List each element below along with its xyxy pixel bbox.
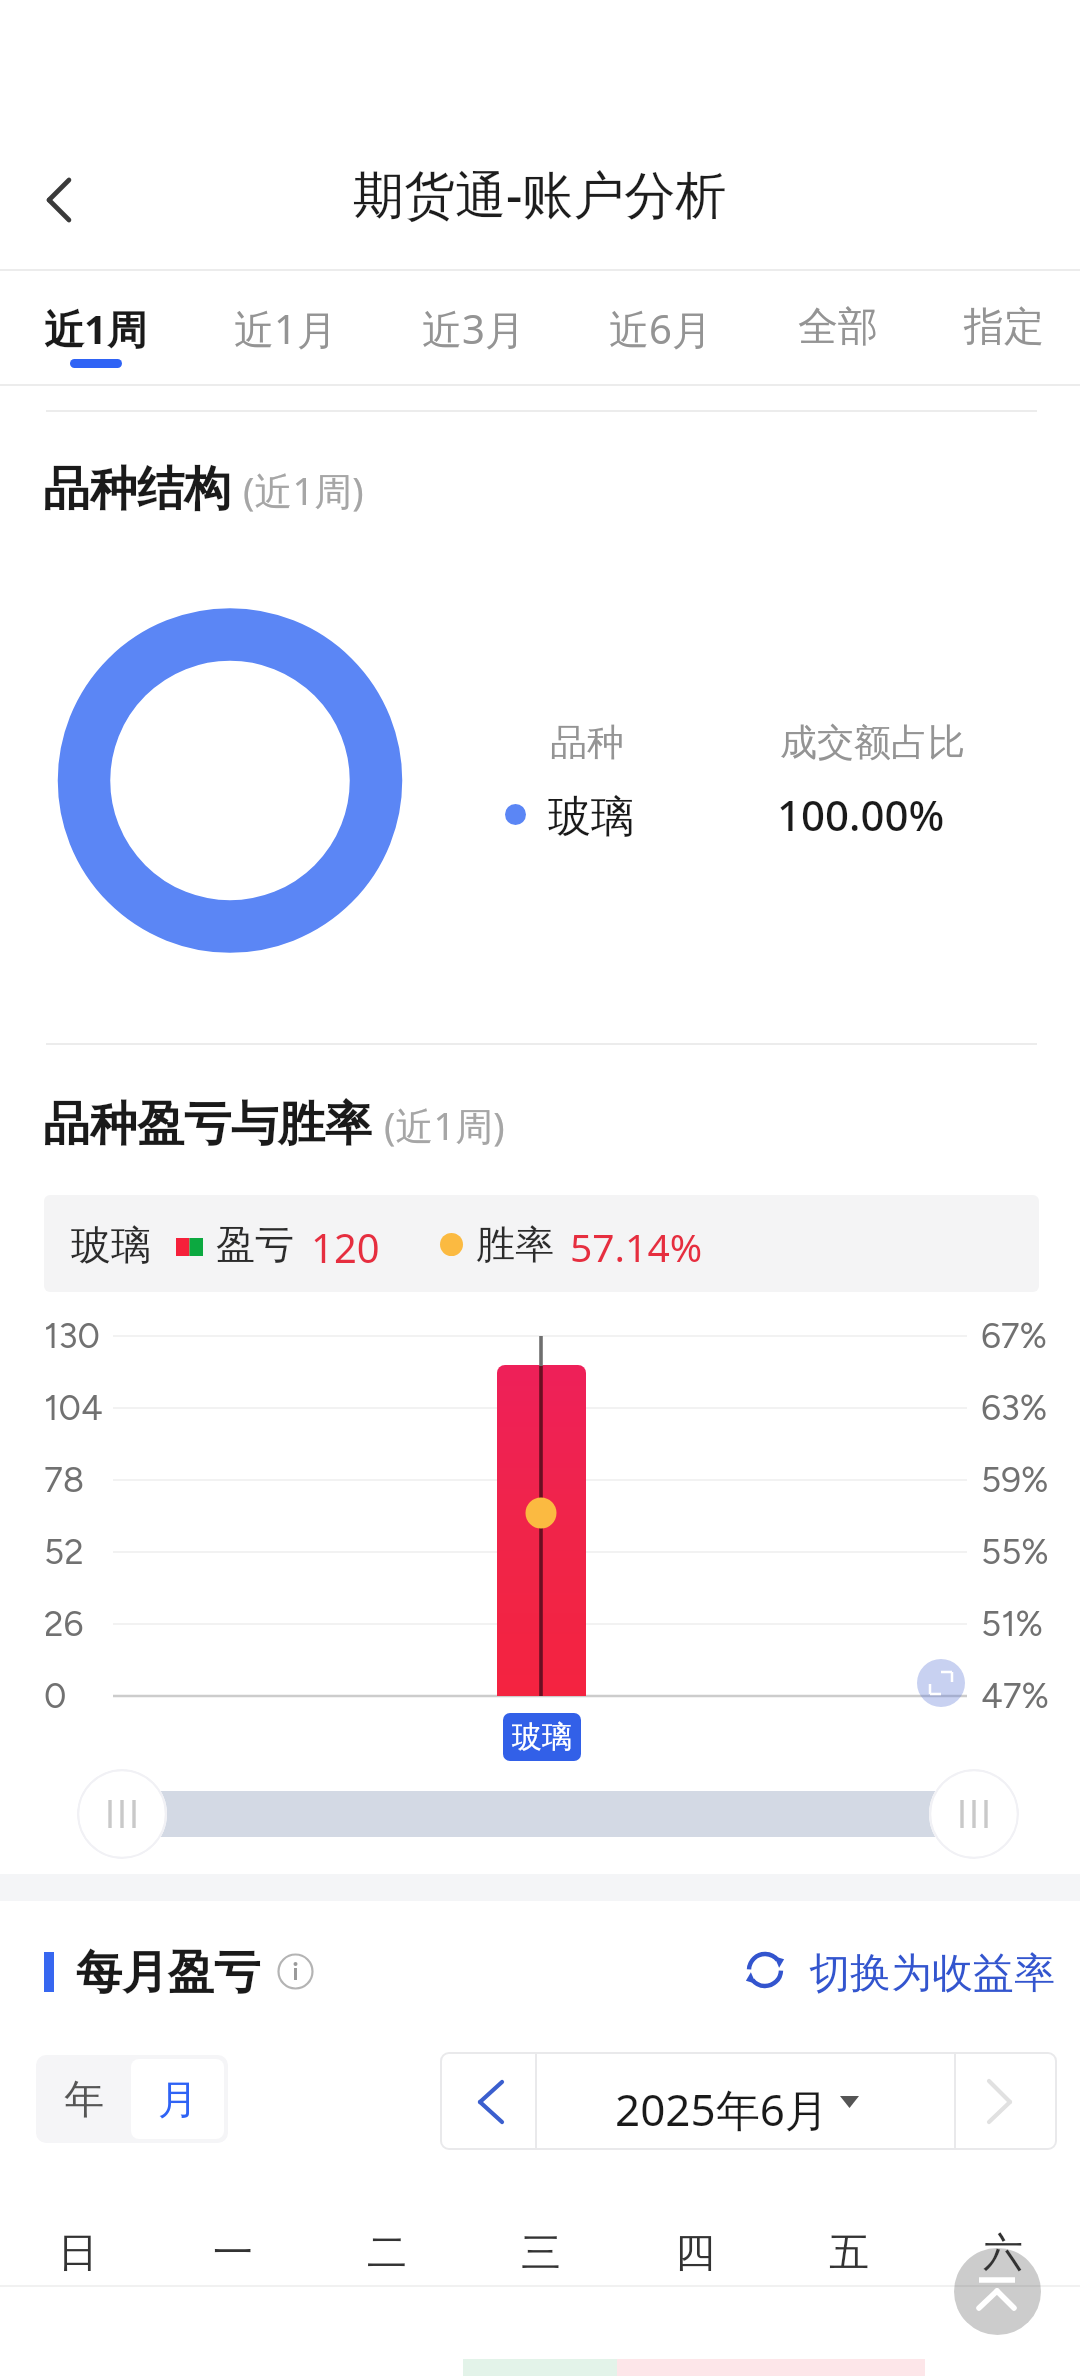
staticText: 67% xyxy=(981,1315,1048,1357)
staticText: 2025年6月 xyxy=(615,2079,829,2139)
button[interactable]: 2025年6月 xyxy=(536,2053,955,2149)
button[interactable]: 近3月 xyxy=(403,301,543,389)
button[interactable]: 玻璃 xyxy=(503,1713,581,1761)
staticText: 六 xyxy=(983,2227,1023,2277)
staticText: 63% xyxy=(981,1387,1048,1429)
button[interactable]: Next month xyxy=(955,2053,1056,2149)
button[interactable]: 切换为收益率 xyxy=(740,1940,1060,2000)
staticText: 胜率 xyxy=(476,1220,554,1269)
staticText: 年 xyxy=(64,2074,104,2124)
staticText: 59% xyxy=(981,1459,1049,1501)
staticText: (近1周) xyxy=(384,1099,505,1151)
button[interactable]: Previous month xyxy=(441,2053,536,2149)
staticText: 三 xyxy=(521,2227,561,2277)
staticText: 每月盈亏 xyxy=(76,1944,260,2002)
button[interactable]: Info xyxy=(277,1953,314,1990)
staticText: 近6月 xyxy=(609,301,712,356)
staticText: 一 xyxy=(213,2227,253,2277)
button[interactable]: 全部 xyxy=(768,301,908,389)
staticText: 100.00% xyxy=(777,786,945,843)
staticText: (近1周) xyxy=(243,464,364,516)
staticText: 26 xyxy=(44,1603,84,1645)
staticText: 57.14% xyxy=(570,1220,703,1273)
button[interactable]: Drag right xyxy=(929,1769,1019,1859)
button[interactable]: 近6月 xyxy=(590,301,730,389)
staticText: 47% xyxy=(981,1675,1050,1717)
staticText: 四 xyxy=(675,2227,715,2277)
staticText: 130 xyxy=(44,1315,100,1357)
staticText: 日 xyxy=(58,2227,98,2277)
staticText: 月 xyxy=(158,2074,198,2124)
button[interactable]: Drag left xyxy=(77,1769,167,1859)
button[interactable]: Full screen xyxy=(917,1659,965,1707)
staticText: 55% xyxy=(981,1531,1049,1573)
staticText: 二 xyxy=(367,2227,407,2277)
button[interactable]: Back xyxy=(11,152,107,248)
staticText: 品种 xyxy=(550,719,624,766)
staticText: 全部 xyxy=(798,301,878,351)
staticText: 0 xyxy=(44,1675,67,1717)
staticText: 51% xyxy=(981,1603,1044,1645)
button[interactable]: 近1周 xyxy=(25,301,165,389)
staticText: 104 xyxy=(44,1387,103,1429)
staticText: 近3月 xyxy=(422,301,525,356)
staticText: 52 xyxy=(44,1531,84,1573)
staticText: 玻璃 xyxy=(71,1220,151,1270)
staticText: 玻璃 xyxy=(548,790,634,844)
staticText: 盈亏 xyxy=(216,1220,294,1269)
staticText: 78 xyxy=(44,1459,85,1501)
staticText: 120 xyxy=(311,1220,380,1274)
button[interactable]: Scroll to top xyxy=(954,2248,1041,2335)
staticText: 指定 xyxy=(964,301,1044,351)
staticText: 近1周 xyxy=(44,301,147,356)
button[interactable]: 指定 xyxy=(934,301,1074,389)
staticText: 品种盈亏与胜率 xyxy=(43,1095,372,1154)
staticText: 玻璃 xyxy=(512,1718,572,1756)
button[interactable]: 玻璃 xyxy=(44,1195,1039,1292)
staticText: 近1月 xyxy=(234,301,337,356)
button[interactable]: 近1月 xyxy=(215,301,355,389)
staticText: 成交额占比 xyxy=(780,719,965,766)
staticText: 切换为收益率 xyxy=(809,1948,1055,2000)
button[interactable]: 月 xyxy=(131,2059,224,2139)
staticText: 期货通-账户分析 xyxy=(353,158,727,228)
staticText: 五 xyxy=(829,2227,869,2277)
button[interactable]: 年 xyxy=(36,2055,132,2143)
staticText: 品种结构 xyxy=(43,460,231,519)
